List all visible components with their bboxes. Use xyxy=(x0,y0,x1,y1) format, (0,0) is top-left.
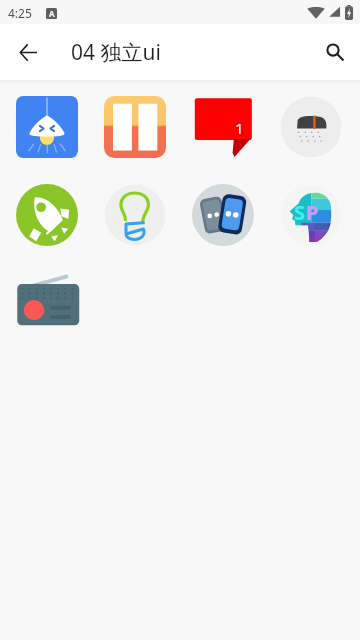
button[interactable]: Radio xyxy=(3,259,91,347)
button[interactable]: Speech xyxy=(267,171,355,259)
button[interactable]: Weather xyxy=(267,83,355,171)
button[interactable]: Search xyxy=(313,30,357,74)
staticText: 4:25 xyxy=(8,5,32,21)
staticText: P xyxy=(306,199,319,226)
staticText: S xyxy=(294,199,306,226)
button[interactable]: Book xyxy=(91,83,179,171)
button[interactable]: Transfer xyxy=(179,171,267,259)
button[interactable]: Idea xyxy=(91,171,179,259)
button[interactable]: Back xyxy=(6,30,50,74)
staticText: 04 独立ui xyxy=(71,38,161,67)
staticText: 1 xyxy=(235,118,244,138)
button[interactable]: Rocket xyxy=(3,171,91,259)
button[interactable]: Notification xyxy=(179,83,267,171)
button[interactable]: Lamp xyxy=(3,83,91,171)
staticText: A xyxy=(49,8,55,19)
